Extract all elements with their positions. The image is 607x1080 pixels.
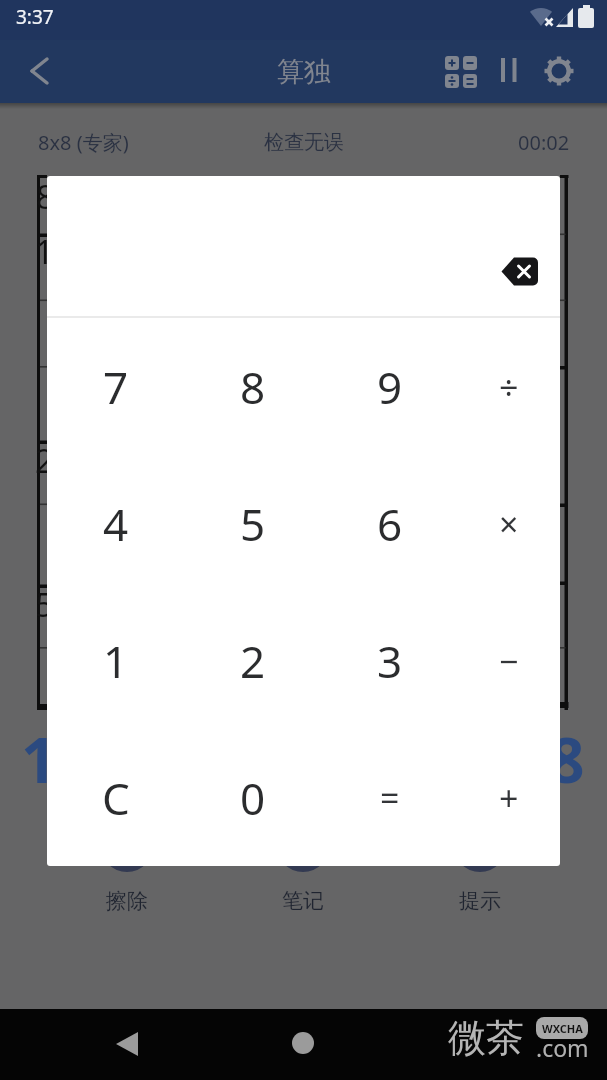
button[interactable]: [273, 1014, 333, 1074]
button[interactable]: ÷: [458, 318, 560, 455]
staticText: 笔记: [282, 888, 324, 914]
staticText: 提示: [459, 888, 501, 914]
staticText: 2: [240, 631, 266, 691]
staticText: 擦除: [106, 888, 148, 914]
staticText: 6: [377, 494, 403, 554]
button[interactable]: [488, 50, 530, 92]
button[interactable]: 9: [321, 318, 458, 455]
button[interactable]: [97, 1014, 157, 1074]
staticText: 1: [35, 229, 54, 274]
staticText: 检查无误: [264, 130, 344, 155]
button[interactable]: C: [47, 729, 184, 866]
staticText: 4: [103, 494, 129, 554]
staticText: 8x8 (专家): [38, 129, 129, 156]
button[interactable]: =: [321, 729, 458, 866]
button[interactable]: [484, 240, 554, 302]
button[interactable]: 1: [47, 592, 184, 729]
button[interactable]: 3: [321, 592, 458, 729]
staticText: 8: [36, 174, 55, 219]
staticText: 5: [35, 582, 54, 627]
staticText: .com: [536, 1032, 589, 1058]
button[interactable]: ×: [458, 455, 560, 592]
staticText: 7: [103, 357, 129, 417]
staticText: 00:02: [518, 129, 570, 156]
staticText: 微茶: [448, 1014, 524, 1062]
button[interactable]: 5: [184, 455, 321, 592]
staticText: 9: [377, 357, 403, 417]
button[interactable]: 4: [47, 455, 184, 592]
staticText: 3: [377, 631, 403, 691]
staticText: C: [102, 768, 130, 828]
button[interactable]: 6: [321, 455, 458, 592]
button[interactable]: +: [458, 729, 560, 866]
staticText: ÷: [499, 364, 519, 410]
staticText: 1: [103, 631, 129, 691]
staticText: −: [499, 638, 519, 684]
button[interactable]: [538, 50, 580, 92]
staticText: 2: [35, 438, 54, 483]
button[interactable]: [440, 50, 482, 92]
button[interactable]: 2: [184, 592, 321, 729]
staticText: 0: [240, 768, 266, 828]
staticText: 1: [21, 717, 57, 801]
staticText: =: [380, 775, 400, 821]
button[interactable]: −: [458, 592, 560, 729]
staticText: 8: [549, 717, 585, 801]
button[interactable]: 7: [47, 318, 184, 455]
button[interactable]: 8: [184, 318, 321, 455]
staticText: 3:37: [16, 4, 54, 30]
staticText: 5: [240, 494, 266, 554]
button[interactable]: 0: [184, 729, 321, 866]
staticText: 算独: [277, 55, 331, 89]
staticText: ×: [499, 501, 519, 547]
button[interactable]: [18, 51, 60, 93]
staticText: +: [499, 775, 519, 821]
staticText: WXCHA: [542, 1021, 583, 1036]
staticText: 8: [240, 357, 266, 417]
